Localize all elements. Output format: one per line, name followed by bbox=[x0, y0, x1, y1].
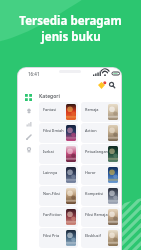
staticText: Eksklusif bbox=[85, 233, 101, 238]
button[interactable]: FanFiction bbox=[39, 207, 78, 227]
staticText: Horor bbox=[85, 170, 96, 175]
staticText: Isekai bbox=[43, 149, 54, 154]
button[interactable]: Isekai bbox=[39, 144, 78, 164]
staticText: Fiksi Ilmiah bbox=[43, 128, 64, 133]
button[interactable]: Action bbox=[81, 123, 120, 143]
button[interactable]: Stats bbox=[22, 117, 35, 130]
button[interactable]: Awards bbox=[22, 143, 35, 156]
button[interactable]: Premium bbox=[96, 80, 106, 90]
staticText: Lainnya bbox=[43, 170, 58, 175]
staticText: Fiksi Pria bbox=[43, 233, 60, 238]
staticText: Petualangan bbox=[85, 149, 108, 154]
staticText: Remaja bbox=[85, 107, 99, 112]
button[interactable]: Fiksi Pria bbox=[39, 228, 78, 248]
button[interactable]: Kompetisi bbox=[81, 186, 120, 206]
staticText: FanFiction bbox=[43, 212, 62, 217]
staticText: 16:41 bbox=[28, 71, 40, 77]
staticText: jenis buku bbox=[41, 29, 101, 45]
button[interactable]: Fantasi bbox=[39, 102, 78, 122]
button[interactable]: Rewards bbox=[22, 104, 35, 117]
button[interactable]: Horor bbox=[81, 165, 120, 185]
staticText: Kompetisi bbox=[85, 191, 104, 196]
staticText: Non-Fiksi bbox=[43, 191, 60, 196]
button[interactable]: Eksklusif bbox=[81, 228, 120, 248]
staticText: Fiksi Remaja bbox=[85, 212, 108, 217]
button[interactable]: Remaja bbox=[81, 102, 120, 122]
button[interactable]: Non-Fiksi bbox=[39, 186, 78, 206]
button[interactable]: Fiksi Ilmiah bbox=[39, 123, 78, 143]
staticText: Fantasi bbox=[43, 107, 57, 112]
button[interactable]: Petualangan bbox=[81, 144, 120, 164]
staticText: Tersedia beragam bbox=[19, 13, 122, 29]
staticText: Kategori bbox=[39, 93, 60, 100]
button[interactable]: Categories bbox=[22, 91, 35, 104]
button[interactable]: Lainnya bbox=[39, 165, 78, 185]
button[interactable]: Write bbox=[22, 130, 35, 143]
staticText: Action bbox=[85, 128, 97, 133]
button[interactable]: Search bbox=[107, 80, 117, 90]
button[interactable]: Fiksi Remaja bbox=[81, 207, 120, 227]
